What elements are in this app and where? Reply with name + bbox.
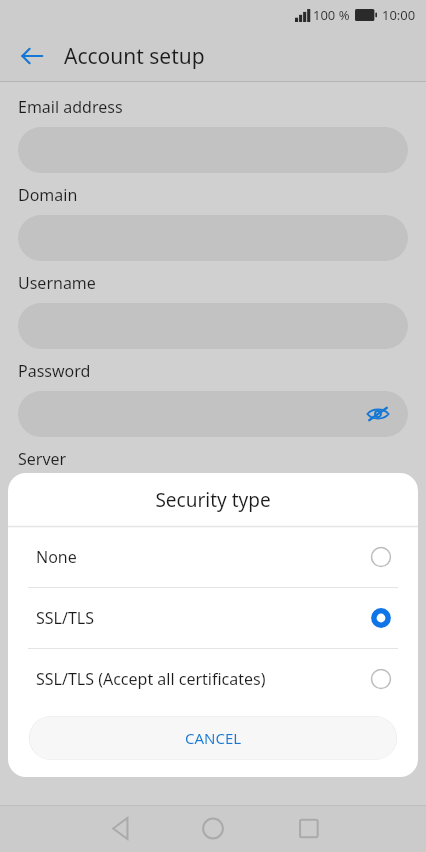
button[interactable]: Back bbox=[10, 34, 54, 78]
staticText: CANCEL bbox=[185, 728, 242, 748]
button[interactable] bbox=[18, 479, 408, 525]
staticText: SSL/TLS bbox=[36, 607, 370, 629]
button[interactable]: CANCEL bbox=[29, 716, 397, 760]
staticText: 10:00 bbox=[382, 6, 416, 24]
button[interactable]: Show password bbox=[360, 396, 396, 432]
staticText: Email address bbox=[18, 96, 123, 118]
staticText: Account setup bbox=[64, 42, 205, 71]
button[interactable]: SSL/TLS bbox=[8, 588, 418, 648]
staticText: None bbox=[36, 546, 370, 568]
staticText: Username bbox=[18, 272, 96, 294]
button[interactable]: Show password bbox=[18, 391, 408, 437]
button[interactable]: Recent apps bbox=[284, 805, 426, 852]
staticText: Domain bbox=[18, 184, 78, 206]
staticText: Server bbox=[18, 448, 67, 470]
button[interactable]: Home bbox=[142, 805, 284, 852]
staticText: SSL/TLS (Accept all certificates) bbox=[36, 668, 370, 690]
staticText: 100 % bbox=[313, 6, 350, 24]
button[interactable]: Back bbox=[0, 805, 142, 852]
staticText: Security type bbox=[155, 487, 271, 513]
staticText: Password bbox=[18, 360, 91, 382]
button[interactable]: SSL/TLS (Accept all certificates) bbox=[8, 649, 418, 709]
button[interactable]: None bbox=[8, 527, 418, 587]
